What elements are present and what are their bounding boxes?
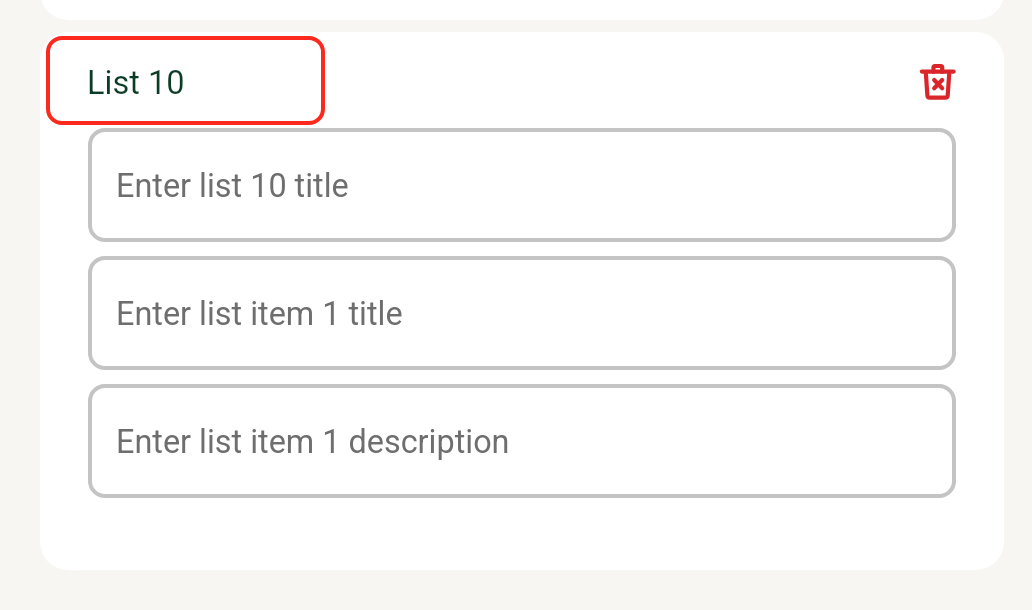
button[interactable]: Delete list	[912, 56, 964, 108]
staticText: Enter list item 1 title	[116, 295, 403, 333]
button[interactable]: Enter list item 1 title	[88, 256, 956, 370]
staticText: List 10	[87, 64, 185, 102]
staticText: Enter list 10 title	[116, 167, 349, 205]
button[interactable]: Enter list item 1 description	[88, 384, 956, 498]
button[interactable]: List 10	[46, 36, 325, 125]
button[interactable]: Enter list 10 title	[88, 128, 956, 242]
staticText: Enter list item 1 description	[116, 423, 510, 461]
